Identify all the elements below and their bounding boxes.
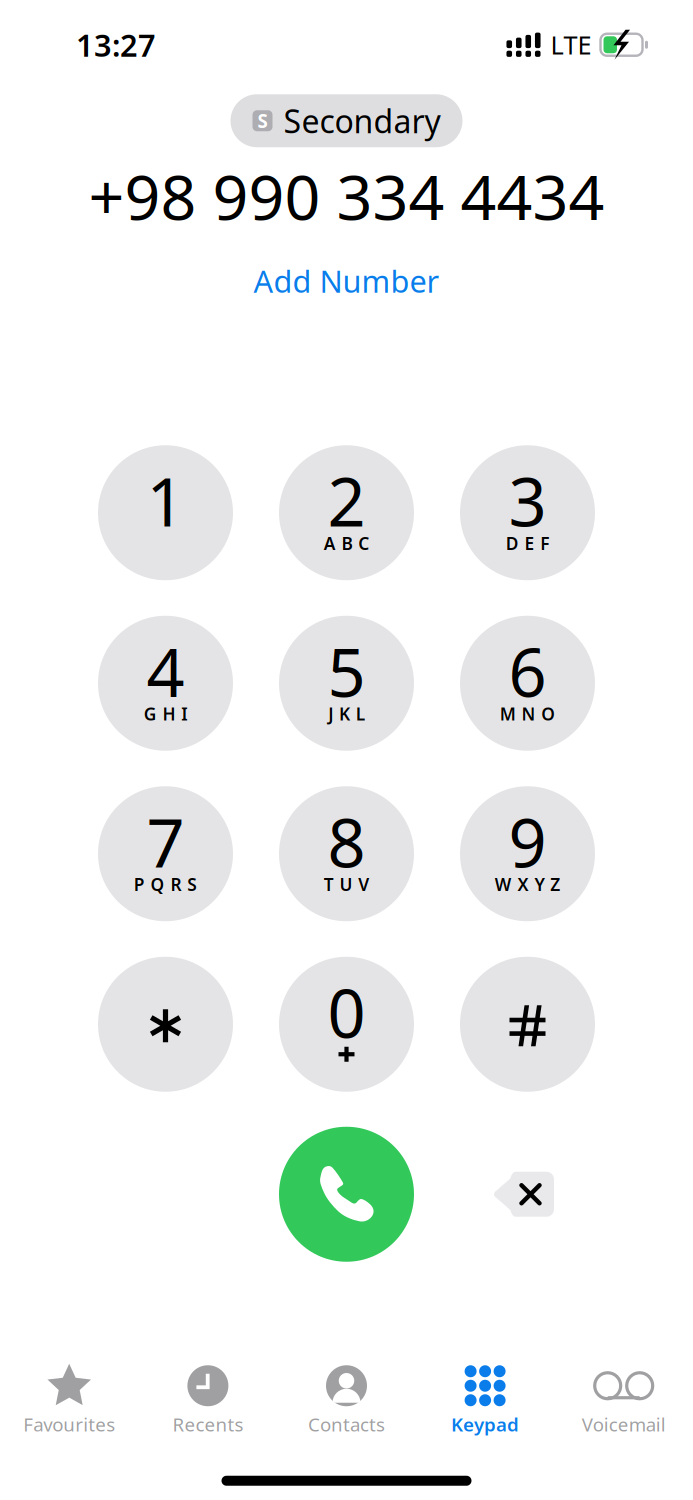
staticText: MNO <box>500 702 555 725</box>
button[interactable]: 6 <box>460 616 595 751</box>
staticText: 9 <box>508 797 546 886</box>
button[interactable]: 9 <box>460 786 595 921</box>
button[interactable]: Delete <box>478 1158 570 1230</box>
button[interactable]: Favourites <box>0 1362 139 1437</box>
button[interactable] <box>460 957 595 1092</box>
staticText: 2 <box>327 456 365 545</box>
button[interactable]: 7 <box>98 786 233 921</box>
staticText: S <box>257 108 267 133</box>
staticText: WXYZ <box>495 873 560 896</box>
staticText: 0 <box>327 968 365 1056</box>
staticText: Contacts <box>308 1412 385 1437</box>
staticText: DEF <box>506 532 549 555</box>
button[interactable]: Recents <box>139 1362 277 1437</box>
button[interactable]: 1 <box>98 445 233 580</box>
button[interactable]: 0 <box>279 957 414 1092</box>
staticText: Keypad <box>451 1412 519 1437</box>
staticText: 5 <box>327 627 365 715</box>
staticText: TUV <box>324 873 369 896</box>
staticText: Recents <box>172 1412 243 1437</box>
staticText: Favourites <box>23 1412 115 1437</box>
button[interactable]: 4 <box>98 616 233 751</box>
staticText: +98 990 334 4434 <box>88 154 604 237</box>
staticText: PQRS <box>134 873 197 896</box>
staticText: 7 <box>146 797 184 886</box>
staticText: JKL <box>328 702 365 725</box>
button[interactable]: 5 <box>279 616 414 751</box>
staticText: ABC <box>324 532 369 555</box>
staticText: 6 <box>508 627 546 715</box>
staticText: Secondary <box>283 99 440 142</box>
staticText: GHI <box>144 702 187 725</box>
button[interactable]: S <box>230 94 462 147</box>
staticText: Voicemail <box>582 1412 666 1437</box>
staticText: 4 <box>146 627 184 715</box>
button[interactable]: Add Number <box>229 260 463 301</box>
staticText: LTE <box>550 28 591 61</box>
button[interactable]: 3 <box>460 445 595 580</box>
button[interactable] <box>98 957 233 1092</box>
staticText: 8 <box>327 797 365 886</box>
staticText: 1 <box>146 456 184 545</box>
button[interactable]: Keypad <box>416 1362 554 1437</box>
button[interactable]: 2 <box>279 445 414 580</box>
button[interactable]: 8 <box>279 786 414 921</box>
staticText: Add Number <box>253 260 439 301</box>
button[interactable]: Voicemail <box>554 1362 693 1437</box>
staticText: 3 <box>508 456 546 545</box>
button[interactable]: Call <box>279 1127 414 1262</box>
staticText: 13:27 <box>76 24 156 65</box>
button[interactable]: Contacts <box>277 1362 416 1437</box>
